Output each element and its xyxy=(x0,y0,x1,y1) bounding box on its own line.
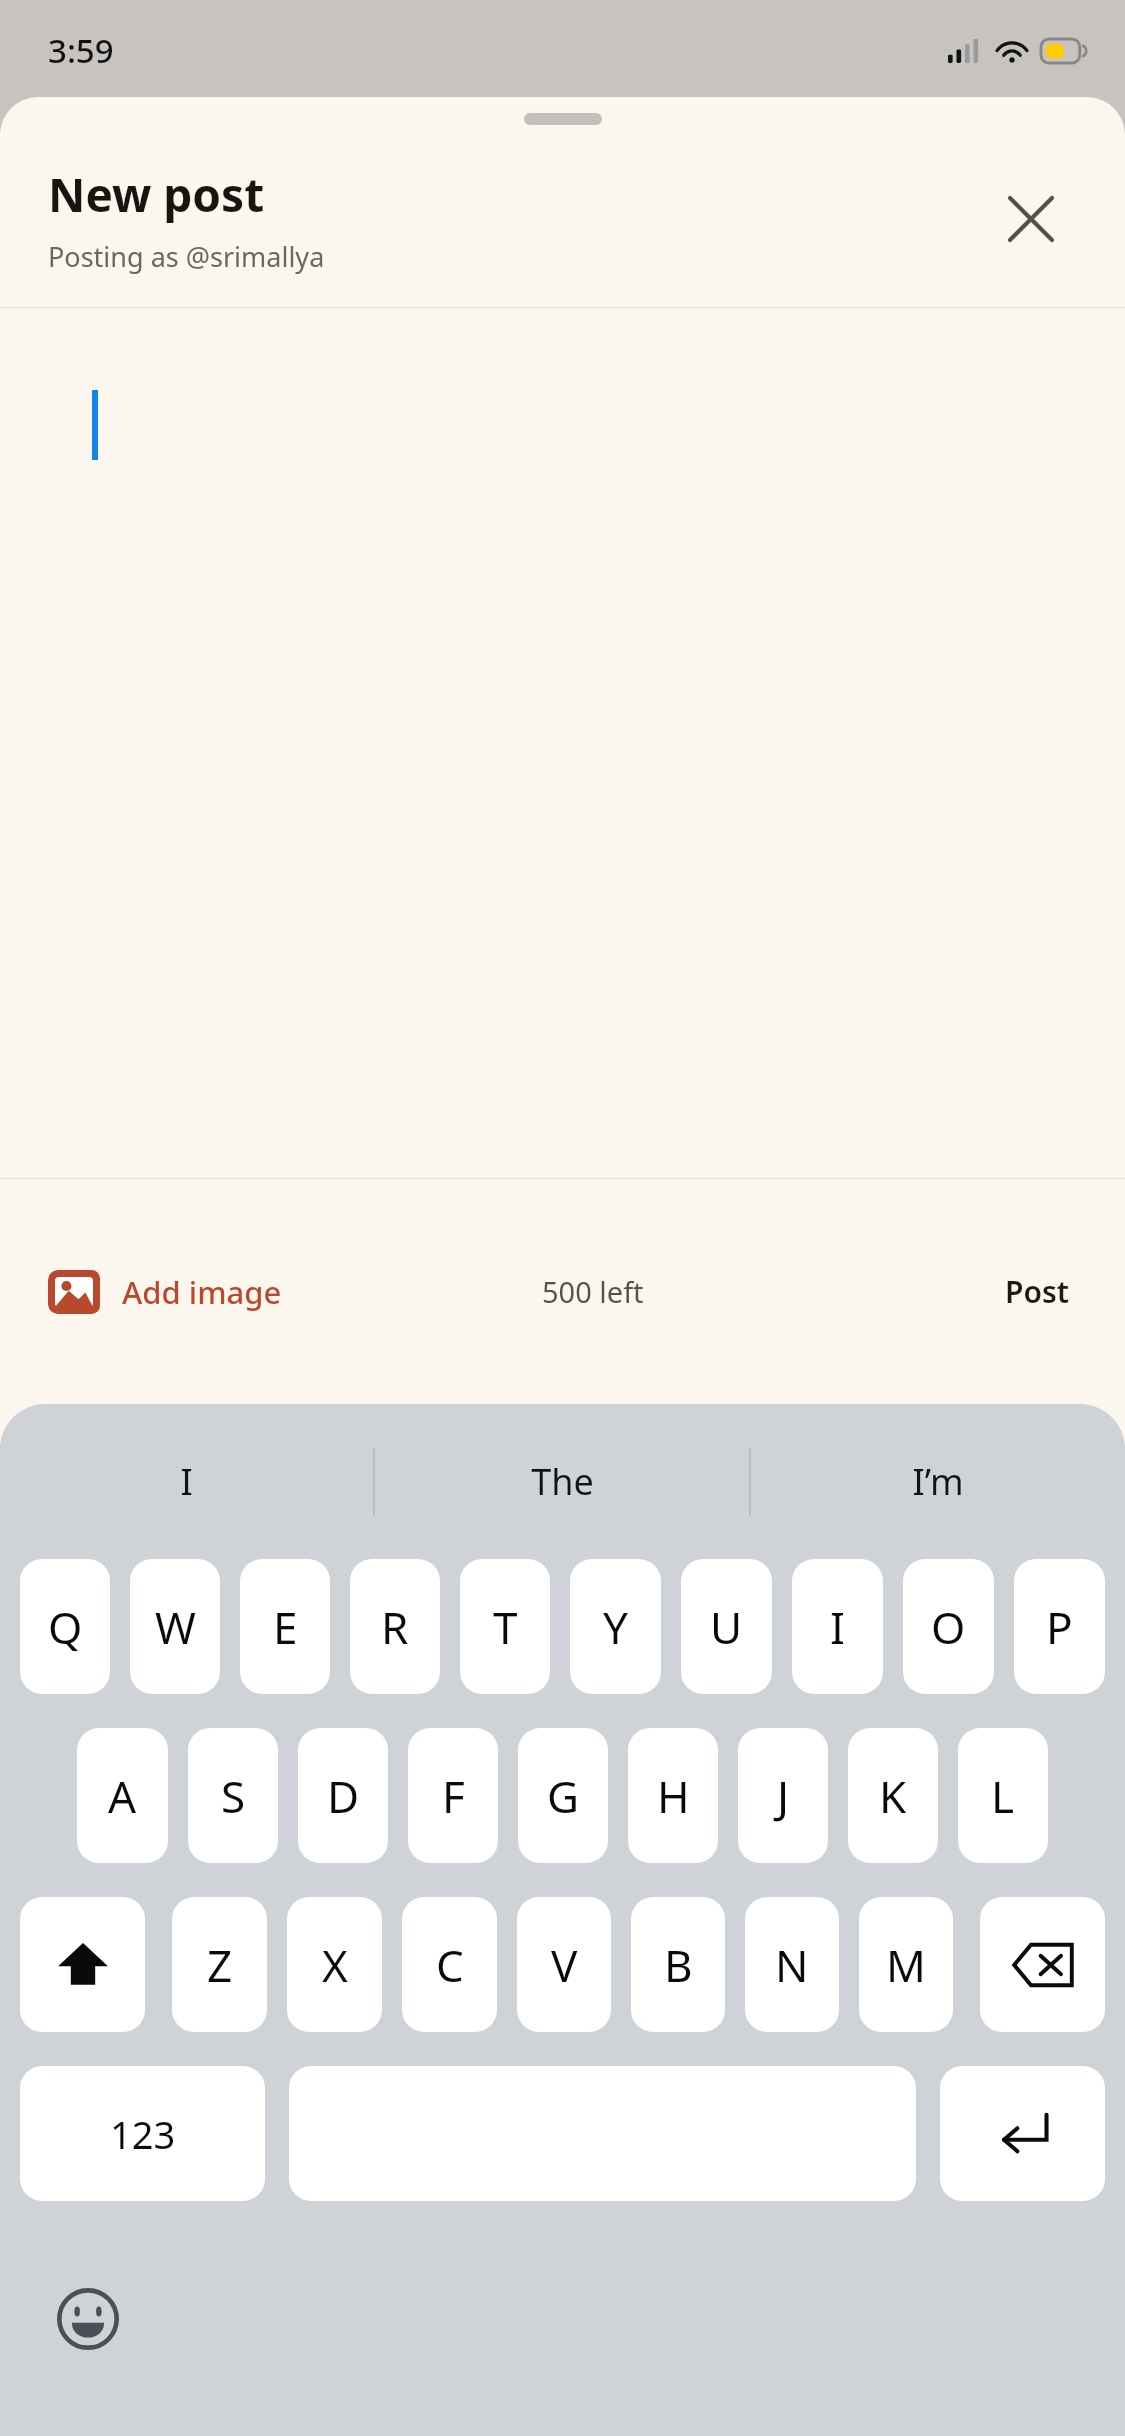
staticText: A xyxy=(108,1766,137,1826)
staticText: D xyxy=(327,1766,360,1826)
button[interactable]: M xyxy=(859,1897,953,2032)
button[interactable]: Q xyxy=(20,1559,110,1694)
button[interactable]: G xyxy=(518,1728,608,1863)
button[interactable]: E xyxy=(240,1559,330,1694)
staticText: 3:59 xyxy=(48,28,114,73)
staticText: Y xyxy=(603,1597,628,1657)
button[interactable]: J xyxy=(738,1728,828,1863)
staticText: B xyxy=(664,1935,693,1995)
button[interactable]: X xyxy=(287,1897,382,2032)
button[interactable]: Space xyxy=(289,2066,916,2201)
staticText: H xyxy=(657,1766,690,1826)
staticText: C xyxy=(436,1935,464,1995)
button[interactable]: C xyxy=(402,1897,497,2032)
button[interactable]: K xyxy=(848,1728,938,1863)
staticText: J xyxy=(777,1766,790,1826)
staticText: The xyxy=(531,1457,594,1506)
button[interactable]: Post xyxy=(989,1261,1085,1322)
staticText: V xyxy=(551,1935,578,1995)
staticText: L xyxy=(991,1766,1015,1826)
staticText: G xyxy=(547,1766,580,1826)
staticText: P xyxy=(1046,1597,1073,1657)
button[interactable]: Close xyxy=(989,177,1073,261)
staticText: Z xyxy=(207,1935,233,1995)
button[interactable]: Add image xyxy=(48,1270,282,1314)
staticText: O xyxy=(931,1597,966,1657)
button[interactable]: V xyxy=(517,1897,611,2032)
staticText: E xyxy=(273,1597,298,1657)
staticText: N xyxy=(775,1935,809,1995)
staticText: Post xyxy=(1005,1271,1069,1312)
button[interactable]: P xyxy=(1014,1559,1105,1694)
button[interactable]: O xyxy=(903,1559,994,1694)
staticText: R xyxy=(381,1597,409,1657)
staticText: T xyxy=(493,1597,518,1657)
staticText: 500 left xyxy=(542,1272,644,1311)
button[interactable]: Z xyxy=(172,1897,267,2032)
staticText: I xyxy=(180,1457,193,1506)
staticText: Posting as @srimallya xyxy=(48,238,325,275)
button[interactable]: I xyxy=(792,1559,883,1694)
button[interactable]: Shift xyxy=(20,1897,145,2032)
staticText: I xyxy=(830,1597,845,1657)
staticText: M xyxy=(886,1935,926,1995)
button[interactable]: B xyxy=(631,1897,725,2032)
button[interactable]: Emoji xyxy=(40,2271,136,2367)
button[interactable]: D xyxy=(298,1728,388,1863)
button[interactable]: L xyxy=(958,1728,1048,1863)
button[interactable]: U xyxy=(681,1559,772,1694)
staticText: 123 xyxy=(110,2108,176,2160)
button[interactable]: I xyxy=(0,1404,373,1559)
button[interactable]: F xyxy=(408,1728,498,1863)
button[interactable]: A xyxy=(77,1728,168,1863)
button[interactable]: Backspace xyxy=(980,1897,1105,2032)
button[interactable]: Return xyxy=(940,2066,1105,2201)
staticText: S xyxy=(221,1766,246,1826)
staticText: F xyxy=(442,1766,465,1826)
button[interactable] xyxy=(0,308,1125,1178)
staticText: W xyxy=(155,1597,196,1657)
button[interactable]: W xyxy=(130,1559,220,1694)
button[interactable]: N xyxy=(745,1897,839,2032)
staticText: New post xyxy=(48,163,265,226)
staticText: I’m xyxy=(912,1457,964,1506)
button[interactable]: H xyxy=(628,1728,718,1863)
staticText: X xyxy=(322,1935,348,1995)
button[interactable]: T xyxy=(460,1559,550,1694)
button[interactable]: R xyxy=(350,1559,440,1694)
button[interactable]: I’m xyxy=(751,1404,1125,1559)
button[interactable]: Y xyxy=(570,1559,661,1694)
button[interactable]: 123 xyxy=(20,2066,265,2201)
staticText: Add image xyxy=(122,1271,282,1313)
staticText: Q xyxy=(48,1597,83,1657)
button[interactable]: The xyxy=(375,1404,749,1559)
button[interactable]: S xyxy=(188,1728,278,1863)
staticText: U xyxy=(710,1597,743,1657)
staticText: K xyxy=(879,1766,907,1826)
